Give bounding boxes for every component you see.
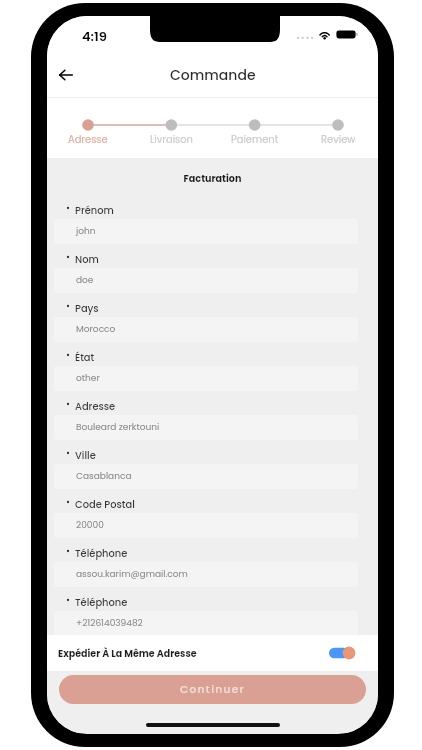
staticText: +212614039482: [76, 617, 143, 630]
staticText: Code Postal: [75, 498, 135, 512]
staticText: john: [76, 225, 96, 238]
staticText: Facturation: [47, 172, 378, 185]
button[interactable]: john: [54, 219, 358, 244]
button[interactable]: Bouleard zerktouni: [54, 415, 358, 440]
staticText: Commande: [170, 65, 256, 85]
staticText: Prénom: [75, 204, 114, 218]
staticText: other: [76, 372, 100, 385]
button[interactable]: Review: [312, 133, 364, 147]
button[interactable]: Paiement: [229, 133, 281, 147]
button[interactable]: +212614039482: [54, 611, 358, 636]
staticText: Expédier À La Même Adresse: [58, 647, 197, 660]
button[interactable]: Continuer: [59, 675, 366, 704]
staticText: doe: [76, 274, 94, 287]
button[interactable]: Livraison: [145, 133, 197, 147]
staticText: Nom: [75, 253, 99, 267]
button[interactable]: Expédier À La Même Adresse: [58, 635, 355, 671]
staticText: Téléphone: [75, 547, 128, 561]
button[interactable]: Morocco: [54, 317, 358, 342]
staticText: assou.karim@gmail.com: [76, 568, 188, 581]
staticText: Continuer: [180, 682, 246, 697]
button[interactable]: 20000: [54, 513, 358, 538]
staticText: Bouleard zerktouni: [76, 421, 160, 434]
button[interactable]: Expédier à la même adresse: [329, 646, 355, 660]
staticText: État: [75, 351, 95, 365]
button[interactable]: Back: [52, 61, 80, 89]
staticText: Adresse: [75, 400, 116, 414]
staticText: Morocco: [76, 323, 116, 336]
staticText: Adresse: [68, 133, 108, 147]
staticText: Téléphone: [75, 596, 128, 610]
staticText: Livraison: [150, 133, 193, 147]
staticText: Ville: [75, 449, 96, 463]
button[interactable]: doe: [54, 268, 358, 293]
staticText: Casablanca: [76, 470, 132, 483]
button[interactable]: Casablanca: [54, 464, 358, 489]
staticText: Pays: [75, 302, 99, 316]
staticText: Review: [321, 133, 356, 147]
staticText: Paiement: [231, 133, 279, 147]
button[interactable]: assou.karim@gmail.com: [54, 562, 358, 587]
button[interactable]: other: [54, 366, 358, 391]
button[interactable]: Adresse: [62, 133, 114, 147]
staticText: 20000: [76, 519, 104, 532]
staticText: 4:19: [82, 27, 107, 45]
